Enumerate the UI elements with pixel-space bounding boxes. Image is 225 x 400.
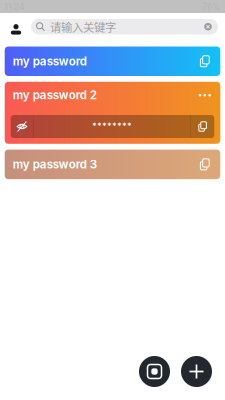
button[interactable]: Copy password (191, 115, 214, 138)
staticText: my password (13, 54, 87, 68)
button[interactable]: Add password (181, 356, 212, 387)
button[interactable]: Account (6, 19, 26, 35)
button[interactable]: Select items (139, 356, 170, 387)
staticText: my password 2 (13, 88, 97, 102)
staticText: ******** (92, 121, 132, 132)
button[interactable]: Copy password (193, 47, 217, 76)
button[interactable]: Clear search (201, 19, 215, 34)
button[interactable]: Show password (11, 115, 33, 138)
button[interactable]: Copy password (193, 150, 217, 179)
button[interactable]: More options (193, 81, 217, 110)
staticText: my password 3 (13, 157, 97, 171)
staticText: 请输入关键字 (50, 18, 116, 35)
